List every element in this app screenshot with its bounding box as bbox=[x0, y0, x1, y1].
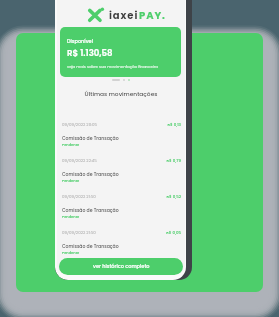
staticText: Últimas movimentações bbox=[57, 90, 185, 98]
button[interactable]: 09/09/2022 21:50 bbox=[57, 194, 185, 228]
staticText: R$ 0,05 bbox=[57, 230, 181, 236]
staticText: Comissão de Transação bbox=[62, 243, 119, 249]
button[interactable]: ver histórico completo bbox=[59, 258, 183, 275]
staticText: Pendente bbox=[62, 214, 80, 219]
staticText: R$ 0,79 bbox=[57, 158, 181, 164]
button[interactable]: Disponível bbox=[60, 27, 181, 77]
staticText: PAY. bbox=[139, 8, 166, 22]
staticText: 09/09/2022 21:50 bbox=[62, 194, 96, 200]
button[interactable]: 09/09/2022 20:05 bbox=[57, 122, 185, 156]
staticText: R$ 1.130,58 bbox=[67, 47, 113, 59]
staticText: R$ 0,13 bbox=[57, 122, 181, 128]
staticText: Pendente bbox=[62, 142, 80, 147]
staticText: iaxei bbox=[109, 8, 139, 22]
staticText: 09/09/2022 21:50 bbox=[62, 230, 96, 236]
staticText: Pendente bbox=[62, 250, 80, 255]
staticText: Comissão de Transação bbox=[62, 207, 119, 213]
staticText: veja mais sobre sua movimentação finance… bbox=[67, 64, 158, 69]
staticText: Disponível bbox=[67, 38, 93, 45]
staticText: Comissão de Transação bbox=[62, 135, 119, 141]
staticText: Comissão de Transação bbox=[62, 171, 119, 177]
staticText: ver histórico completo bbox=[93, 263, 150, 270]
staticText: 09/09/2022 20:05 bbox=[62, 122, 98, 128]
staticText: R$ 0,52 bbox=[57, 194, 181, 200]
button[interactable]: 09/09/2022 21:50 bbox=[57, 230, 185, 264]
button[interactable]: 09/09/2022 22:45 bbox=[57, 158, 185, 192]
button[interactable]: iaxeiPAY logo bbox=[88, 5, 166, 24]
other: iaxeiPAY logo bbox=[88, 8, 104, 22]
staticText: 09/09/2022 22:45 bbox=[62, 158, 97, 164]
staticText: Pendente bbox=[62, 178, 80, 183]
